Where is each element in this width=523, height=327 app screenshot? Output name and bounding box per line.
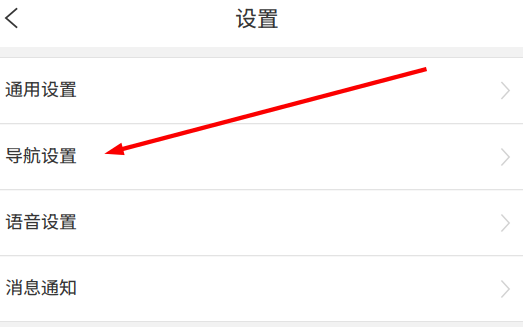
button[interactable]: 消息通知 — [0, 257, 523, 321]
button[interactable]: 语音设置 — [0, 191, 523, 255]
staticText: 语音设置 — [5, 207, 77, 234]
staticText: 消息通知 — [5, 273, 77, 300]
staticText: 通用设置 — [5, 75, 77, 101]
button[interactable]: 通用设置 — [0, 58, 523, 123]
staticText: 导航设置 — [5, 141, 77, 168]
button[interactable]: 导航设置 — [0, 125, 523, 189]
button[interactable]: Back — [0, 0, 30, 36]
staticText: 设置 — [235, 1, 279, 33]
